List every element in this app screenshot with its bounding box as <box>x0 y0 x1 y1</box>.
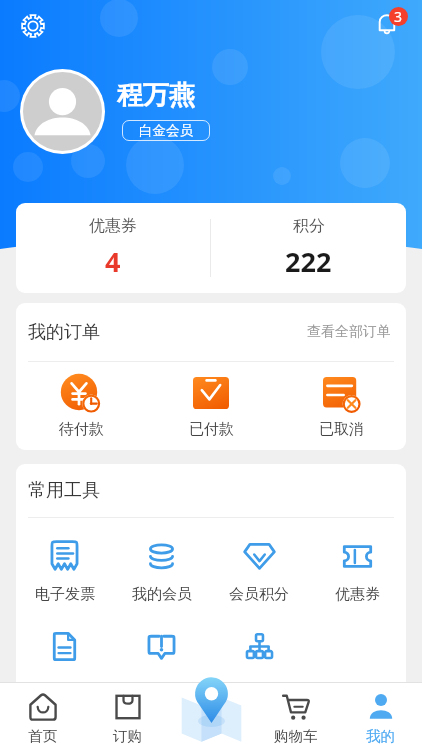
button[interactable]: Map <box>177 675 245 743</box>
staticText: 白金会员 <box>139 122 193 139</box>
staticText: 积分 <box>293 216 325 236</box>
staticText: 优惠券 <box>89 216 137 236</box>
staticText: 购物车 <box>274 727 318 745</box>
staticText: 会员积分 <box>229 585 289 604</box>
button[interactable]: 购物车 <box>254 683 338 750</box>
staticText: 3 <box>394 7 403 26</box>
button[interactable]: Tool <box>16 630 113 663</box>
button[interactable]: Notifications <box>370 2 412 44</box>
staticText: 已付款 <box>189 420 234 439</box>
staticText: 程万燕 <box>117 79 195 112</box>
staticText: 常用工具 <box>28 479 100 502</box>
button[interactable]: 待付款 <box>16 373 146 439</box>
button[interactable]: 首页 <box>0 683 85 750</box>
staticText: 4 <box>105 243 121 280</box>
staticText: 订购 <box>113 727 142 745</box>
button[interactable]: 电子发票 <box>16 540 113 604</box>
button[interactable]: Avatar <box>23 72 102 151</box>
button[interactable]: 已付款 <box>146 373 276 439</box>
button[interactable]: Tool <box>113 630 210 663</box>
staticText: 222 <box>285 243 332 280</box>
button[interactable]: Settings <box>18 11 48 41</box>
button[interactable]: 已取消 <box>276 373 406 439</box>
staticText: 查看全部订单 <box>307 323 391 341</box>
button[interactable]: 我的 <box>338 683 422 750</box>
button[interactable]: 优惠券 <box>16 203 210 293</box>
staticText: 电子发票 <box>35 585 95 604</box>
staticText: 我的 <box>366 727 395 745</box>
staticText: 我的会员 <box>132 585 192 604</box>
button[interactable]: 订购 <box>85 683 170 750</box>
button[interactable]: 我的会员 <box>113 540 210 604</box>
button[interactable]: 会员积分 <box>210 540 308 604</box>
button[interactable]: 白金会员 <box>122 120 210 141</box>
staticText: 优惠券 <box>335 585 380 604</box>
staticText: 我的订单 <box>28 321 100 344</box>
staticText: 已取消 <box>319 420 364 439</box>
button[interactable]: 优惠券 <box>308 540 406 604</box>
button[interactable]: 积分 <box>211 203 406 293</box>
staticText: 首页 <box>28 727 57 745</box>
staticText: 待付款 <box>59 420 104 439</box>
button[interactable]: Tool <box>210 630 308 663</box>
button[interactable]: 查看全部订单 <box>297 317 392 347</box>
